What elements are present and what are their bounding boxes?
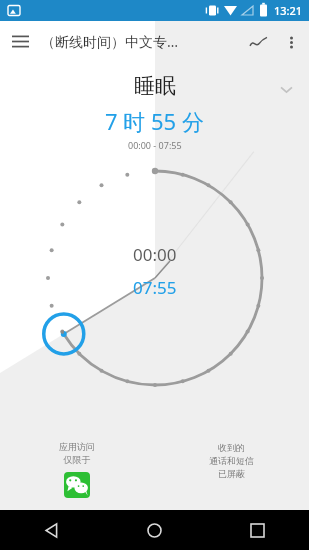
- button[interactable]: Home: [103, 510, 206, 550]
- button[interactable]: More options: [275, 26, 307, 58]
- staticText: 7 时 55 分: [105, 106, 204, 136]
- staticText: 00:00: [133, 243, 177, 266]
- button[interactable]: 应用访问 仅限于: [0, 441, 154, 498]
- button[interactable]: WeChat: [64, 472, 90, 498]
- staticText: 收到的 通话和短信 已屏蔽: [209, 442, 254, 479]
- staticText: 应用访问 仅限于: [59, 441, 95, 465]
- button[interactable]: Menu: [0, 21, 41, 62]
- staticText: 07:55: [133, 276, 177, 299]
- staticText: （断线时间）中文专…: [41, 32, 241, 51]
- button[interactable]: Back: [0, 510, 103, 550]
- staticText: 00:00 - 07:55: [128, 139, 182, 151]
- button[interactable]: Expand: [273, 76, 299, 102]
- button[interactable]: Statistics: [241, 25, 275, 59]
- button[interactable]: Recents: [206, 510, 309, 550]
- staticText: 睡眠: [134, 73, 176, 99]
- staticText: 13:21: [274, 3, 303, 18]
